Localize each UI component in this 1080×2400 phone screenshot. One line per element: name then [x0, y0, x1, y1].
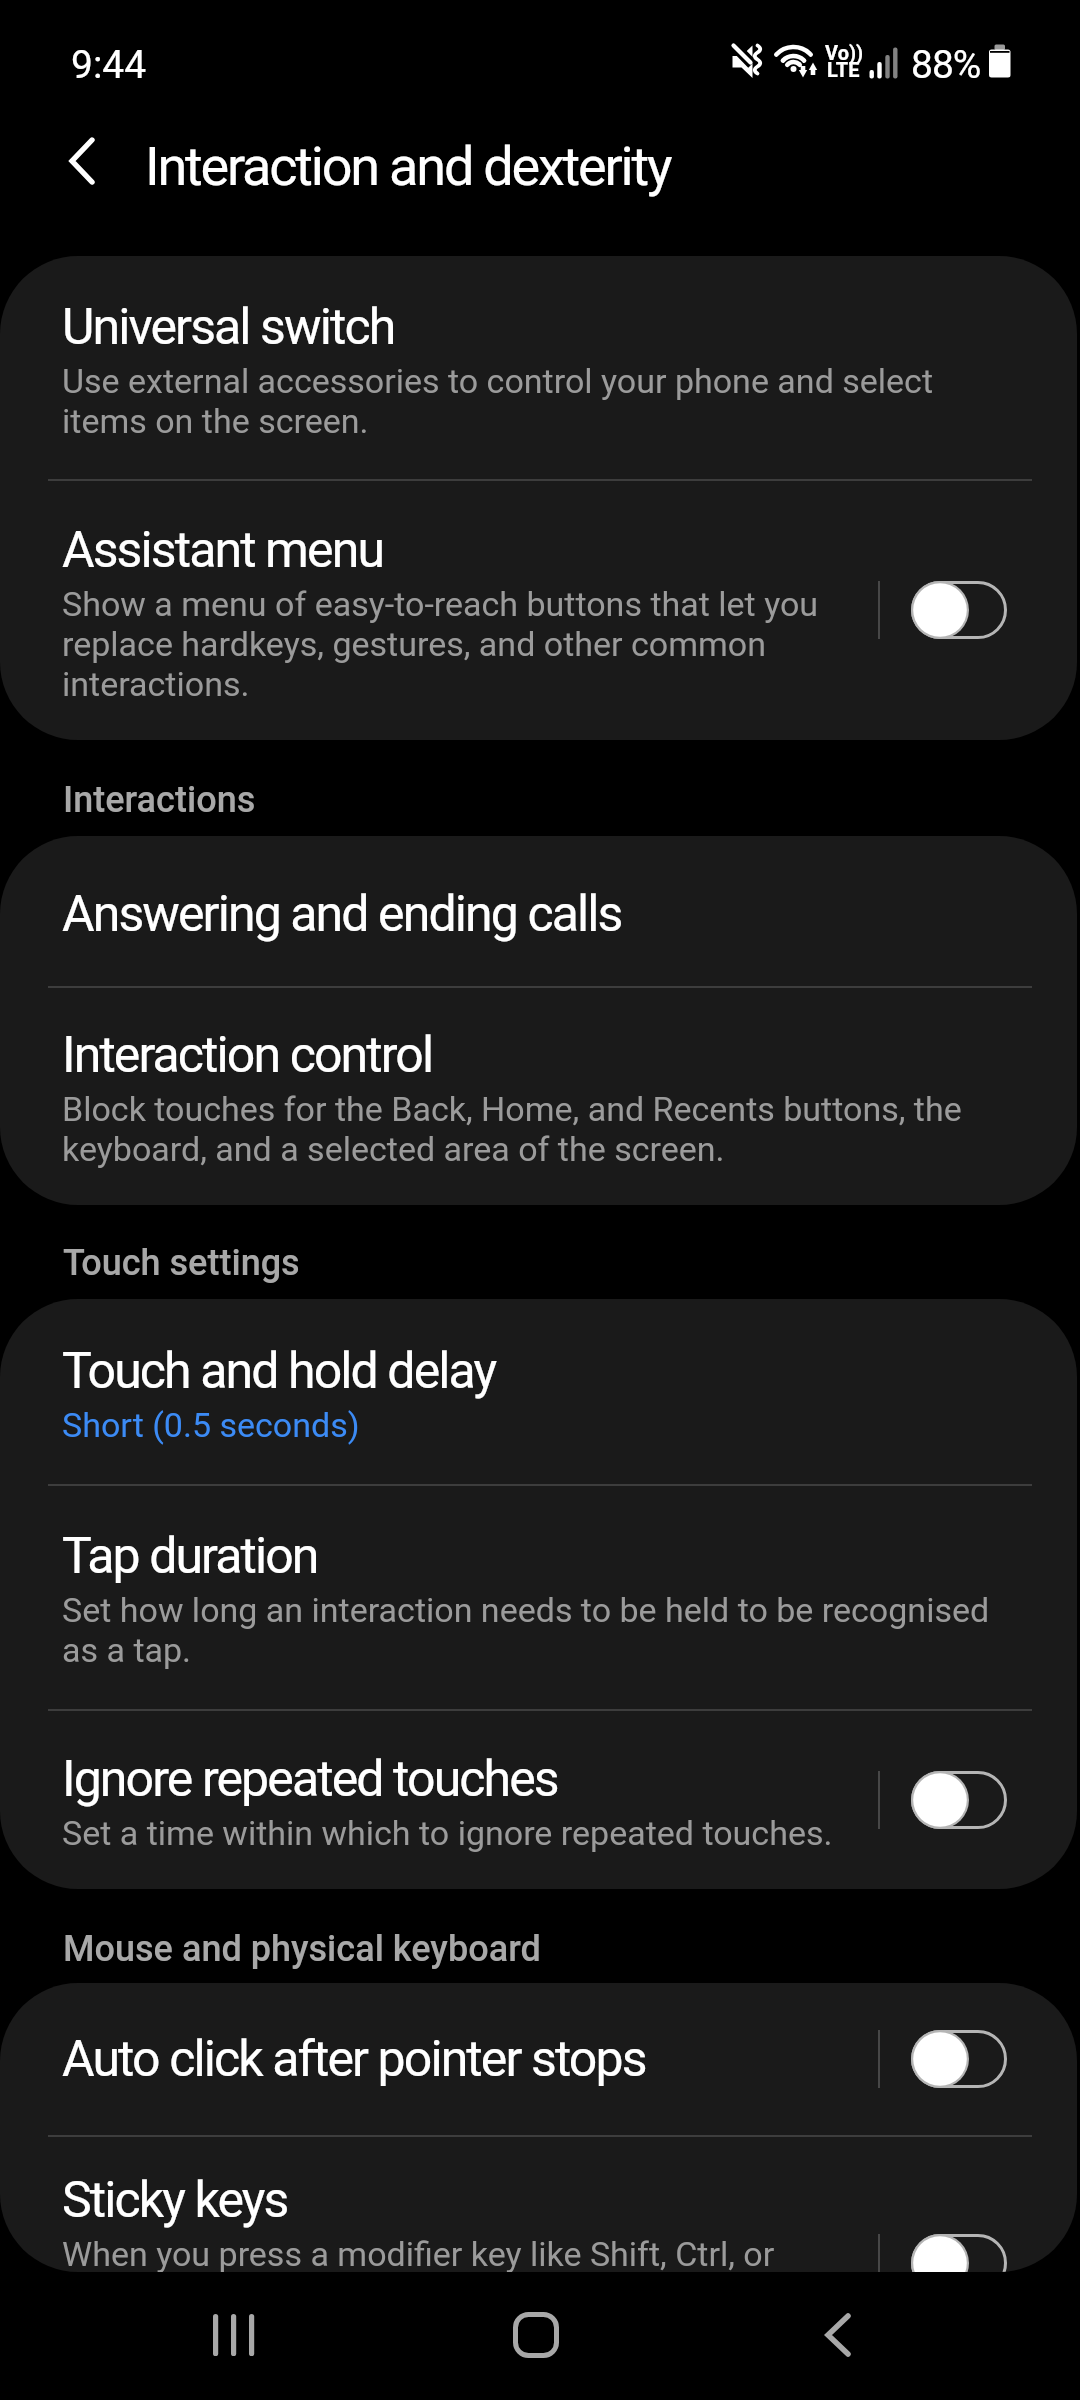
staticText: 88%: [911, 42, 981, 88]
staticText: Auto click after pointer stops: [62, 2030, 646, 2089]
button[interactable]: Interaction control: [0, 988, 1077, 1205]
button[interactable]: Turn on Assistant menu: [911, 581, 1007, 639]
staticText: Sticky keys: [62, 2171, 288, 2230]
button[interactable]: Assistant menu: [0, 481, 1077, 740]
button[interactable]: Home: [496, 2295, 576, 2375]
button[interactable]: Answering and ending calls: [0, 836, 1077, 986]
staticText: Use external accessories to control your…: [62, 361, 1007, 441]
button[interactable]: Universal switch: [0, 256, 1077, 479]
staticText: Interaction and dexterity: [145, 135, 671, 198]
staticText: When you press a modifier key like Shift…: [62, 2234, 775, 2272]
button[interactable]: Sticky keys: [0, 2137, 1077, 2272]
staticText: Set a time within which to ignore repeat…: [62, 1813, 833, 1853]
staticText: Answering and ending calls: [62, 885, 622, 944]
staticText: Vo)): [825, 41, 864, 64]
staticText: Set how long an interaction needs to be …: [62, 1590, 1007, 1670]
staticText: Short (0.5 seconds): [62, 1405, 360, 1445]
button[interactable]: Auto click after pointer stops: [0, 1983, 1077, 2135]
staticText: Assistant menu: [62, 521, 384, 580]
staticText: LTE: [827, 58, 860, 81]
staticText: Interactions: [63, 779, 256, 821]
staticText: Ignore repeated touches: [62, 1750, 558, 1809]
staticText: 9:44: [71, 42, 147, 88]
staticText: Block touches for the Back, Home, and Re…: [62, 1089, 1007, 1169]
staticText: Tap duration: [62, 1527, 318, 1586]
button[interactable]: Recent apps: [193, 2295, 273, 2375]
staticText: Show a menu of easy-to-reach buttons tha…: [62, 584, 872, 704]
staticText: Touch settings: [63, 1242, 300, 1284]
staticText: Interaction control: [62, 1026, 433, 1085]
button[interactable]: Turn on Auto click after pointer stops: [911, 2030, 1007, 2088]
button[interactable]: Ignore repeated touches: [0, 1711, 1077, 1889]
button[interactable]: Navigate up: [43, 122, 121, 200]
button[interactable]: Touch and hold delay: [0, 1299, 1077, 1484]
staticText: Touch and hold delay: [62, 1342, 496, 1401]
button[interactable]: Back: [798, 2295, 878, 2375]
button[interactable]: Turn on Ignore repeated touches: [911, 1771, 1007, 1829]
button[interactable]: Tap duration: [0, 1486, 1077, 1709]
staticText: Universal switch: [62, 298, 395, 357]
staticText: Mouse and physical keyboard: [63, 1928, 541, 1970]
button[interactable]: Turn on Sticky keys: [911, 2234, 1007, 2272]
